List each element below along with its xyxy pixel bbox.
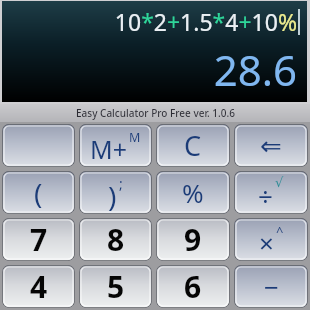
staticText: √ [275,175,284,190]
staticText: 9 [184,219,202,260]
button[interactable]: M+ [79,124,152,167]
staticText: 8 [107,219,125,260]
staticText: ( [34,174,43,212]
staticText: 28.6 [213,41,297,98]
button[interactable]: 9 [156,218,230,261]
button[interactable]: ) [79,171,152,214]
staticText: Easy Calculator Pro Free ver. 1.0.6 [76,106,235,120]
button[interactable]: 6 [156,265,230,308]
button[interactable]: 5 [79,265,152,308]
staticText: ) [108,177,117,214]
button[interactable]: − [234,265,308,308]
button[interactable]: 7 [2,218,75,261]
button[interactable]: C [156,124,230,167]
staticText: C [184,127,202,164]
button[interactable]: Menu [2,124,75,167]
staticText: % [182,175,204,210]
staticText: 7 [30,219,48,260]
button[interactable]: ( [2,171,75,214]
button[interactable]: Backspace [234,124,308,167]
button[interactable]: ÷ [234,171,308,214]
staticText: M [129,129,141,146]
button[interactable]: % [156,171,230,214]
staticText: × [259,225,274,260]
button[interactable]: × [234,218,308,261]
staticText: 5 [107,266,125,307]
staticText: − [264,269,279,304]
staticText: ^ [276,222,284,240]
staticText: 10*2+1.5*4+10% [114,6,297,37]
staticText: ⇐ [260,131,282,161]
button[interactable]: 4 [2,265,75,308]
button[interactable]: 8 [79,218,152,261]
staticText: ; [119,174,123,193]
staticText: 6 [184,266,202,307]
staticText: 4 [30,266,48,307]
staticText: M+ [90,132,127,166]
staticText: ÷ [258,178,273,213]
